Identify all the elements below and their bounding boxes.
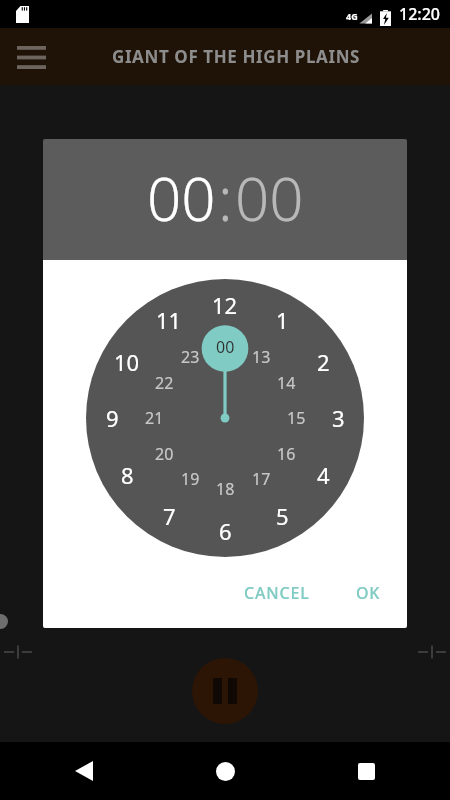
staticText: 00 <box>216 336 235 358</box>
staticText: 5 <box>276 501 289 531</box>
staticText: 18 <box>216 478 235 500</box>
staticText: 20 <box>155 443 174 465</box>
button[interactable]: Home <box>201 747 249 795</box>
staticText: 00 <box>147 157 216 239</box>
staticText: 13 <box>252 346 271 368</box>
button[interactable]: CANCEL <box>234 574 320 612</box>
button[interactable]: Pause <box>192 658 258 724</box>
button[interactable]: 00 <box>147 157 216 239</box>
staticText: 2 <box>317 347 330 377</box>
staticText: 12 <box>212 290 238 320</box>
staticText: 23 <box>181 346 200 368</box>
button[interactable]: OK <box>344 574 393 612</box>
staticText: 9 <box>106 403 119 433</box>
staticText: 19 <box>181 468 200 490</box>
staticText: 3 <box>332 403 345 433</box>
staticText: 00 <box>235 157 304 239</box>
staticText: 4 <box>317 460 330 490</box>
staticText: 12:20 <box>399 3 440 25</box>
staticText: 15 <box>287 407 306 429</box>
staticText: 6 <box>219 516 232 546</box>
button[interactable]: Recent apps <box>342 747 390 795</box>
staticText: 14 <box>277 372 296 394</box>
staticText: GIANT OF THE HIGH PLAINS <box>112 45 361 68</box>
staticText: 17 <box>252 468 271 490</box>
button[interactable]: Open navigation menu <box>4 30 58 84</box>
staticText: 8 <box>121 460 134 490</box>
staticText: 1 <box>276 305 289 335</box>
button[interactable]: 00 <box>235 157 304 239</box>
staticText: OK <box>356 582 381 604</box>
button[interactable]: Back <box>60 747 108 795</box>
staticText: 21 <box>145 407 164 429</box>
staticText: 16 <box>277 443 296 465</box>
staticText: CANCEL <box>244 582 310 604</box>
staticText: 11 <box>156 305 182 335</box>
staticText: 7 <box>163 501 176 531</box>
staticText: : <box>218 157 233 239</box>
staticText: 22 <box>155 372 174 394</box>
staticText: 10 <box>114 347 140 377</box>
staticText: 4G <box>346 10 358 22</box>
